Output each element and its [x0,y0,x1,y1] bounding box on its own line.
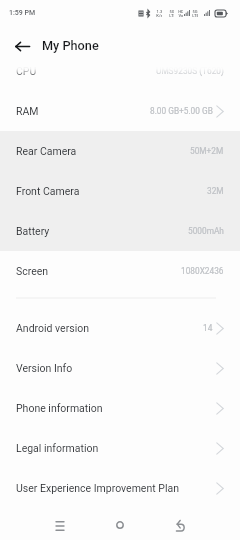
staticText: 5G [169,9,174,14]
staticText: Rear Camera [16,145,77,157]
staticText: UMS9230S (T620) [156,66,224,76]
staticText: 5G [192,9,198,14]
button[interactable]: Android version [0,308,240,348]
staticText: User Experience Improvement Plan [16,482,179,494]
staticText: LTE [192,13,198,18]
staticText: 1:59 PM [9,9,36,17]
staticText: RAM [16,105,39,117]
button[interactable]: Front Camera [0,171,240,211]
button[interactable]: Rear Camera [0,131,240,171]
staticText: VoL [178,13,183,18]
staticText: HD [178,9,183,14]
button[interactable]: Battery [0,211,240,251]
staticText: 5000mAh [188,226,224,236]
staticText: Phone information [16,402,103,414]
staticText: Version Info [16,362,73,374]
staticText: Front Camera [16,185,80,197]
button[interactable]: Back [8,32,36,60]
button[interactable]: RAM [0,91,240,131]
staticText: 1.38 [156,9,162,14]
staticText: 50M+2M [190,146,224,156]
button[interactable]: Back [150,510,210,540]
button[interactable]: Recent apps [30,510,90,540]
staticText: My Phone [42,38,99,53]
button[interactable]: Home [90,510,150,540]
button[interactable]: Phone information [0,388,240,428]
button[interactable]: Legal information [0,428,240,468]
staticText: Screen [16,265,49,277]
staticText: K/s [156,13,162,18]
staticText: CPU [16,65,37,77]
staticText: Legal information [16,442,99,454]
staticText: LTE [169,13,174,18]
staticText: Battery [16,225,50,237]
button[interactable]: Version Info [0,348,240,388]
button[interactable]: User Experience Improvement Plan [0,468,240,508]
button[interactable]: CPU [0,65,240,91]
button[interactable]: Screen [0,251,240,291]
staticText: 14 [203,323,213,333]
staticText: 1080X2436 [181,266,224,276]
staticText: 32M [207,186,224,196]
staticText: Android version [16,322,89,334]
staticText: 8.00 GB+5.00 GB [150,106,213,116]
